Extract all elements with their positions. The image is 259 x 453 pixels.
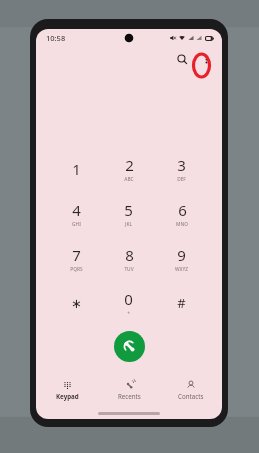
button[interactable]: 7 <box>50 243 102 275</box>
staticText: Recents <box>118 392 141 400</box>
button[interactable]: Keypad <box>36 373 98 407</box>
staticText: DEF <box>177 176 186 183</box>
button[interactable]: # <box>155 287 208 319</box>
button[interactable]: Contacts <box>160 373 222 407</box>
staticText: GHI <box>72 221 81 228</box>
button[interactable]: 9 <box>155 243 208 275</box>
button[interactable]: ∗ <box>50 287 102 319</box>
staticText: 10:58 <box>46 33 66 43</box>
staticText: Keypad <box>56 392 79 400</box>
button[interactable]: 3 <box>155 153 208 185</box>
button[interactable]: Recents <box>98 373 160 407</box>
button[interactable]: 4 <box>50 198 102 230</box>
staticText: MNO <box>176 221 188 228</box>
staticText: 4 <box>72 200 81 220</box>
staticText: PQRS <box>70 266 83 273</box>
staticText: WXYZ <box>175 266 188 273</box>
staticText: 7 <box>72 245 81 265</box>
button[interactable]: 0 <box>102 287 155 319</box>
staticText: 0 <box>124 289 133 309</box>
staticText: # <box>177 294 186 312</box>
staticText: TUV <box>124 266 134 273</box>
button[interactable]: 1 <box>50 153 102 185</box>
staticText: Contacts <box>178 392 204 400</box>
staticText: ABC <box>124 176 134 183</box>
button[interactable]: 8 <box>102 243 155 275</box>
staticText: 5 <box>124 200 133 220</box>
staticText: ∗ <box>71 296 82 311</box>
button[interactable]: 6 <box>155 198 208 230</box>
button[interactable]: 2 <box>102 153 155 185</box>
button[interactable]: Search <box>172 49 192 69</box>
staticText: 3 <box>177 155 186 175</box>
staticText: 2 <box>125 155 134 175</box>
button[interactable]: More options <box>196 49 216 69</box>
staticText: 1 <box>72 159 81 179</box>
staticText: 6 <box>178 200 187 220</box>
staticText: JKL <box>125 221 132 228</box>
staticText: 8 <box>125 245 134 265</box>
staticText: + <box>127 310 130 317</box>
staticText: 9 <box>177 245 186 265</box>
button[interactable]: 5 <box>102 198 155 230</box>
button[interactable]: Call <box>114 331 145 362</box>
